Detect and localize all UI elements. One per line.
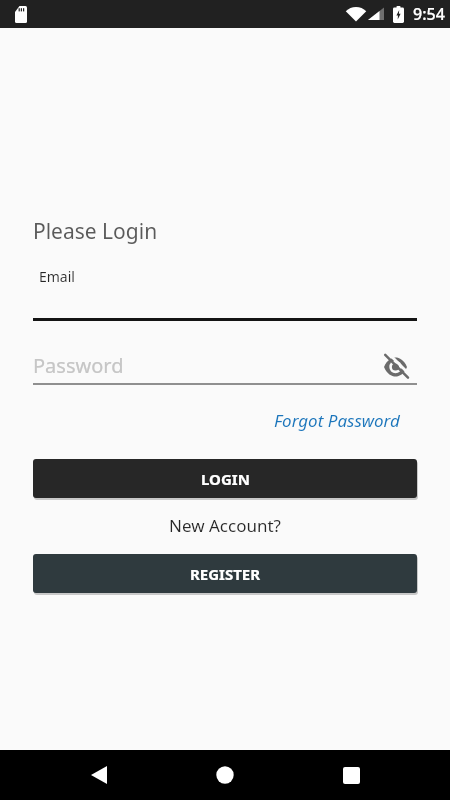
button[interactable]	[383, 352, 409, 378]
button[interactable]: LOGIN	[33, 459, 417, 498]
button[interactable]: Password	[33, 350, 417, 380]
button[interactable]: Email	[33, 262, 417, 318]
staticText: LOGIN	[201, 469, 250, 489]
button[interactable]: Forgot Password	[274, 409, 400, 432]
button[interactable]	[335, 759, 367, 791]
button[interactable]	[83, 759, 115, 791]
button[interactable]	[209, 759, 241, 791]
staticText: Email	[39, 267, 75, 286]
button[interactable]: REGISTER	[33, 554, 417, 593]
staticText: 9:54	[413, 3, 445, 25]
staticText: Please Login	[33, 217, 158, 246]
staticText: REGISTER	[190, 564, 261, 584]
staticText: Password	[33, 352, 124, 379]
staticText: Forgot Password	[274, 409, 400, 432]
staticText: New Account?	[169, 514, 281, 537]
